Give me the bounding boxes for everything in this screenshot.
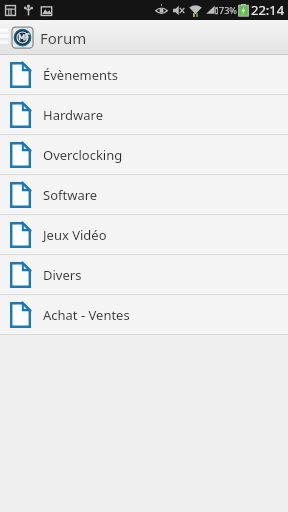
- button[interactable]: Divers: [0, 255, 288, 294]
- button[interactable]: Overclocking: [0, 135, 288, 174]
- staticText: Software: [43, 186, 98, 204]
- button[interactable]: Achat - Ventes: [0, 295, 288, 334]
- button[interactable]: Jeux Vidéo: [0, 215, 288, 254]
- staticText: 73%: [219, 4, 237, 16]
- button[interactable]: Évènements: [0, 55, 288, 94]
- button[interactable]: Software: [0, 175, 288, 214]
- staticText: Divers: [43, 266, 82, 284]
- staticText: Évènements: [43, 66, 118, 84]
- button[interactable]: Navigate up: [0, 20, 10, 55]
- button[interactable]: Hardware: [0, 95, 288, 134]
- staticText: Hardware: [43, 106, 103, 124]
- staticText: 22:14: [251, 1, 285, 19]
- staticText: Jeux Vidéo: [43, 226, 107, 244]
- staticText: Forum: [40, 28, 87, 48]
- staticText: Overclocking: [43, 146, 123, 164]
- other: App logo: [10, 25, 35, 50]
- staticText: Achat - Ventes: [43, 306, 130, 324]
